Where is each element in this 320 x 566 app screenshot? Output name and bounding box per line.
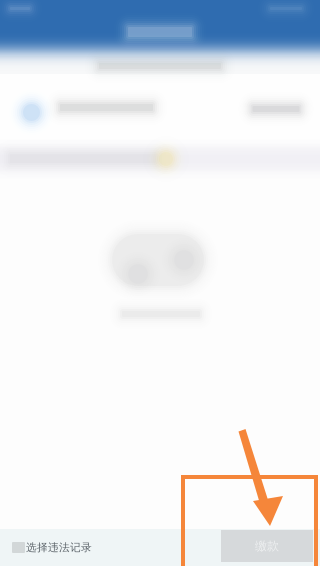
staticText: 选择违法记录 bbox=[26, 541, 92, 554]
staticText: 缴款 bbox=[255, 539, 279, 553]
button[interactable] bbox=[0, 0, 320, 566]
button[interactable]: Back bbox=[0, 0, 46, 44]
button[interactable]: 选择违法记录 bbox=[0, 529, 150, 566]
